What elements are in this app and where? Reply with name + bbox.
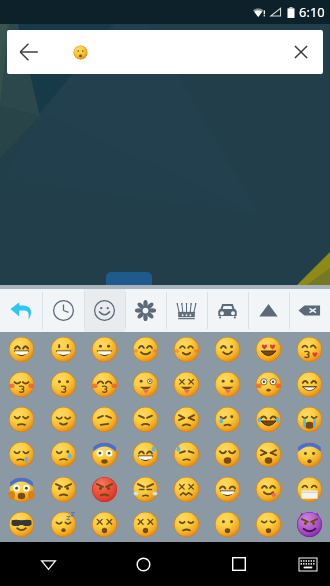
button[interactable]: Emoji 31 bbox=[289, 437, 330, 472]
button[interactable]: Emoji 0 bbox=[0, 332, 42, 367]
button[interactable]: Emoji 38 bbox=[248, 472, 289, 507]
button[interactable]: Undo bbox=[0, 289, 42, 332]
button[interactable]: Emoji 8 bbox=[0, 367, 42, 402]
button[interactable]: Emoji 18 bbox=[84, 402, 125, 437]
button[interactable]: Emoji 24 bbox=[0, 437, 42, 472]
button[interactable]: Emoji 14 bbox=[248, 367, 289, 402]
button[interactable]: Emoji 42 bbox=[84, 507, 125, 542]
button[interactable]: Back bbox=[0, 542, 96, 586]
staticText: 6:10 bbox=[299, 3, 325, 21]
button[interactable]: Emoji 32 bbox=[0, 472, 42, 507]
button[interactable]: Emoji 16 bbox=[0, 402, 42, 437]
button[interactable]: Emoji 39 bbox=[289, 472, 330, 507]
button[interactable]: Home bbox=[96, 542, 191, 586]
button[interactable]: Objects bbox=[248, 289, 289, 332]
button[interactable]: Emoji 1 bbox=[42, 332, 84, 367]
button[interactable]: Clear bbox=[279, 30, 323, 74]
button[interactable]: Emoji 45 bbox=[207, 507, 248, 542]
button[interactable]: Emoji 46 bbox=[248, 507, 289, 542]
button[interactable]: Backspace bbox=[289, 289, 330, 332]
button[interactable]: Emoji 25 bbox=[42, 437, 84, 472]
button[interactable]: Emoji 33 bbox=[42, 472, 84, 507]
button[interactable]: Emoji 37 bbox=[207, 472, 248, 507]
button[interactable]: Food bbox=[166, 289, 207, 332]
button[interactable]: Back bbox=[7, 30, 51, 74]
button[interactable]: Emoji 15 bbox=[289, 367, 330, 402]
button[interactable]: Emoji 40 bbox=[0, 507, 42, 542]
button[interactable]: Emoji 26 bbox=[84, 437, 125, 472]
button[interactable]: Emoji 9 bbox=[42, 367, 84, 402]
button[interactable]: Nature bbox=[125, 289, 166, 332]
button[interactable]: Emoji 36 bbox=[166, 472, 207, 507]
button[interactable]: Emoji 6 bbox=[248, 332, 289, 367]
button[interactable]: Emoji 30 bbox=[248, 437, 289, 472]
button[interactable]: Emoji 20 bbox=[166, 402, 207, 437]
button[interactable]: Emoji 12 bbox=[166, 367, 207, 402]
button[interactable]: Emoji 47 bbox=[289, 507, 330, 542]
button[interactable]: Emoji 29 bbox=[207, 437, 248, 472]
button[interactable]: Emoji 4 bbox=[166, 332, 207, 367]
button[interactable]: Emoji 19 bbox=[125, 402, 166, 437]
button[interactable]: Emoji 5 bbox=[207, 332, 248, 367]
button[interactable]: Emoji 44 bbox=[166, 507, 207, 542]
button[interactable]: Emoji 27 bbox=[125, 437, 166, 472]
button[interactable]: Emoji 41 bbox=[42, 507, 84, 542]
button[interactable]: Emoji 2 bbox=[84, 332, 125, 367]
button[interactable]: Emoji 21 bbox=[207, 402, 248, 437]
button[interactable]: Emoji 43 bbox=[125, 507, 166, 542]
button[interactable]: Emoji 34 bbox=[84, 472, 125, 507]
button[interactable]: Smileys bbox=[84, 289, 125, 332]
button[interactable]: Emoji 35 bbox=[125, 472, 166, 507]
button[interactable]: Emoji 23 bbox=[289, 402, 330, 437]
button[interactable]: Recent bbox=[42, 289, 84, 332]
button[interactable]: Emoji 3 bbox=[125, 332, 166, 367]
button[interactable]: Emoji 17 bbox=[42, 402, 84, 437]
button[interactable]: Emoji 7 bbox=[289, 332, 330, 367]
button[interactable]: Keyboard bbox=[286, 542, 330, 586]
button[interactable]: Emoji 10 bbox=[84, 367, 125, 402]
button[interactable]: Travel bbox=[207, 289, 248, 332]
button[interactable]: Recents bbox=[191, 542, 286, 586]
button[interactable]: Emoji 11 bbox=[125, 367, 166, 402]
button[interactable]: Emoji 22 bbox=[248, 402, 289, 437]
button[interactable]: Emoji 28 bbox=[166, 437, 207, 472]
button[interactable]: Emoji 13 bbox=[207, 367, 248, 402]
